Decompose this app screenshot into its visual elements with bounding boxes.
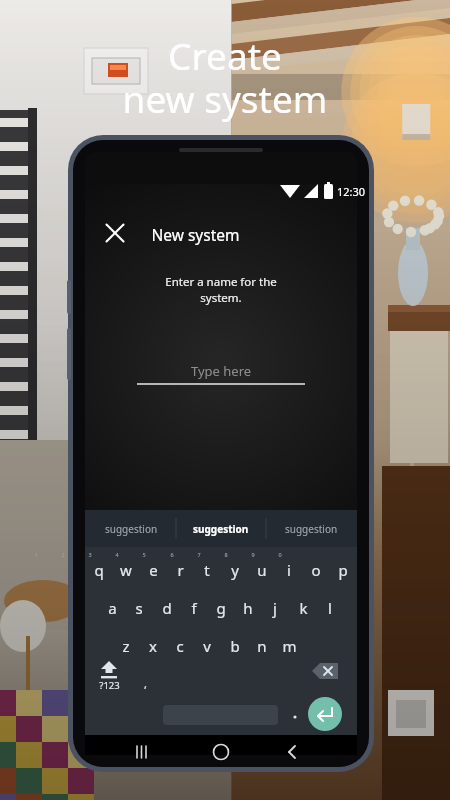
button[interactable]: p xyxy=(330,558,356,582)
staticText: r xyxy=(177,560,184,580)
staticText: c xyxy=(176,636,184,656)
staticText: q xyxy=(94,560,104,580)
staticText: suggestion xyxy=(193,522,249,536)
staticText: 12:30 xyxy=(337,184,366,199)
button[interactable]: suggestion xyxy=(267,510,355,547)
button[interactable]: x xyxy=(140,634,166,658)
button[interactable]: b xyxy=(222,634,248,658)
staticText: 4 xyxy=(115,551,119,558)
staticText: Type here xyxy=(191,362,252,380)
staticText: o xyxy=(311,560,321,580)
staticText: w xyxy=(120,560,132,580)
button[interactable]: w xyxy=(113,558,139,582)
staticText: j xyxy=(273,598,277,618)
button[interactable]: , xyxy=(132,671,158,695)
staticText: 7 xyxy=(197,551,201,558)
button[interactable]: i xyxy=(276,558,302,582)
button[interactable]: Recent apps xyxy=(123,739,163,767)
staticText: t xyxy=(204,560,210,580)
button[interactable]: suggestion xyxy=(87,510,175,547)
staticText: Enter a name for the system. xyxy=(151,274,291,306)
staticText: i xyxy=(287,560,291,580)
staticText: u xyxy=(257,560,267,580)
button[interactable]: r xyxy=(167,558,193,582)
staticText: z xyxy=(122,636,130,656)
button[interactable]: Close xyxy=(97,215,133,251)
staticText: ?123 xyxy=(99,679,120,692)
staticText: 2 xyxy=(61,551,65,558)
staticText: Create new system xyxy=(0,30,450,800)
button[interactable]: Enter xyxy=(307,667,343,703)
button[interactable]: h xyxy=(235,596,261,620)
staticText: 3 xyxy=(88,551,92,558)
button[interactable]: u xyxy=(249,558,275,582)
staticText: m xyxy=(282,636,297,656)
button[interactable]: Shift xyxy=(93,627,127,657)
staticText: k xyxy=(299,598,308,618)
staticText: p xyxy=(338,560,348,580)
button[interactable]: Back xyxy=(275,739,315,767)
button[interactable]: v xyxy=(194,634,220,658)
staticText: l xyxy=(328,598,332,618)
staticText: 8 xyxy=(224,551,228,558)
button[interactable]: z xyxy=(113,634,139,658)
staticText: suggestion xyxy=(105,522,158,536)
staticText: 1 xyxy=(34,551,38,558)
staticText: a xyxy=(108,598,117,618)
staticText: s xyxy=(135,598,143,618)
staticText: y xyxy=(231,560,239,580)
button[interactable]: ?123 xyxy=(96,673,122,697)
button[interactable]: suggestion xyxy=(177,510,265,547)
staticText: 6 xyxy=(170,551,174,558)
button[interactable]: j xyxy=(262,596,288,620)
button[interactable]: c xyxy=(167,634,193,658)
staticText: g xyxy=(216,598,226,618)
staticText: , xyxy=(144,676,147,691)
staticText: v xyxy=(203,636,211,656)
button[interactable]: k xyxy=(290,596,316,620)
staticText: 9 xyxy=(251,551,255,558)
button[interactable]: g xyxy=(208,596,234,620)
button[interactable]: y xyxy=(222,558,248,582)
staticText: e xyxy=(149,560,158,580)
staticText: d xyxy=(162,598,172,618)
button[interactable]: a xyxy=(99,596,125,620)
staticText: 0 xyxy=(278,551,282,558)
button[interactable]: t xyxy=(194,558,220,582)
button[interactable]: m xyxy=(276,634,302,658)
button[interactable]: q xyxy=(86,558,112,582)
button[interactable]: s xyxy=(126,596,152,620)
button[interactable]: o xyxy=(303,558,329,582)
staticText: f xyxy=(191,598,197,618)
button[interactable]: f xyxy=(181,596,207,620)
staticText: New system xyxy=(151,224,240,245)
button[interactable]: d xyxy=(154,596,180,620)
staticText: b xyxy=(230,636,240,656)
button[interactable]: Type here xyxy=(137,356,305,386)
button[interactable]: n xyxy=(249,634,275,658)
button[interactable]: e xyxy=(140,558,166,582)
button[interactable]: l xyxy=(317,596,343,620)
button[interactable]: Home xyxy=(201,739,241,767)
staticText: h xyxy=(243,598,253,618)
staticText: suggestion xyxy=(285,522,338,536)
staticText: n xyxy=(257,636,267,656)
staticText: x xyxy=(149,636,157,656)
staticText: 5 xyxy=(142,551,146,558)
